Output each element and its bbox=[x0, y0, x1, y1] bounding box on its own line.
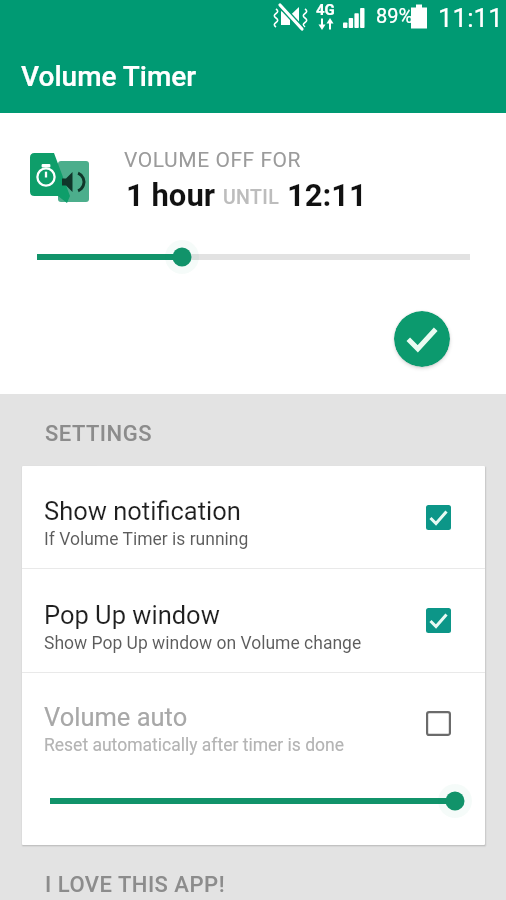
staticText: SETTINGS bbox=[45, 421, 152, 447]
button[interactable]: Volume auto bbox=[22, 673, 485, 773]
staticText: VOLUME OFF FOR bbox=[124, 148, 302, 173]
staticText: 1 hour bbox=[126, 177, 216, 213]
button[interactable]: Show notification bbox=[22, 466, 485, 568]
staticText: 89% bbox=[376, 4, 414, 27]
staticText: 11:11 bbox=[438, 3, 503, 33]
staticText: Volume auto bbox=[44, 702, 188, 732]
staticText: If Volume Timer is running bbox=[44, 529, 249, 550]
staticText: Volume Timer bbox=[21, 60, 197, 93]
button[interactable]: Confirm timer bbox=[394, 311, 450, 367]
staticText: Reset automatically after timer is done bbox=[44, 735, 344, 756]
staticText: Show Pop Up window on Volume change bbox=[44, 633, 362, 654]
staticText: 4G bbox=[316, 1, 335, 19]
button[interactable]: Pop Up window bbox=[22, 569, 485, 672]
staticText: Show notification bbox=[44, 496, 241, 526]
staticText: 12:11 bbox=[287, 177, 367, 213]
staticText: I LOVE THIS APP! bbox=[45, 872, 226, 898]
staticText: UNTIL bbox=[223, 186, 280, 209]
staticText: Pop Up window bbox=[44, 600, 220, 630]
